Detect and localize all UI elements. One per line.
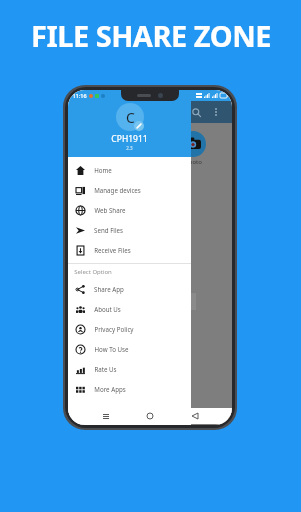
staticText: Privacy Policy (94, 325, 134, 333)
button[interactable]: Edit name (134, 121, 144, 131)
staticText: Receive Files (94, 246, 131, 254)
staticText: CPH1911 (111, 133, 148, 145)
staticText: 2.3 (126, 145, 133, 151)
button[interactable]: Web Share (68, 200, 191, 220)
button[interactable]: Receive Files (68, 240, 191, 260)
staticText: Send Files (94, 226, 123, 234)
button[interactable]: Home (143, 409, 157, 423)
button[interactable]: Back (188, 409, 202, 423)
button[interactable]: About Us (68, 299, 191, 319)
button[interactable]: More Apps (68, 379, 191, 399)
staticText: Photo (185, 158, 202, 166)
button[interactable]: Rate Us (68, 359, 191, 379)
staticText: Manage devices (94, 186, 141, 194)
button[interactable]: More options (208, 104, 224, 120)
staticText: Rate Us (94, 365, 117, 373)
button[interactable]: Share App (68, 279, 191, 299)
staticText: How To Use (94, 345, 129, 353)
staticText: About Us (94, 305, 121, 313)
button[interactable]: Manage devices (68, 180, 191, 200)
button[interactable]: How To Use (68, 339, 191, 359)
button[interactable]: Home (68, 160, 191, 180)
button[interactable]: Photo (180, 131, 206, 157)
staticText: Web Share (94, 206, 126, 214)
button[interactable]: Send Files (68, 220, 191, 240)
button[interactable]: Search (188, 104, 204, 120)
staticText: 11:16 (72, 92, 87, 99)
button[interactable]: Recents (99, 409, 113, 423)
staticText: Select Option (74, 268, 112, 276)
staticText: Share App (94, 285, 124, 293)
staticText: C (126, 108, 135, 127)
staticText: More Apps (94, 385, 126, 393)
staticText: FILE SHARE ZONE (31, 16, 271, 55)
button[interactable]: Privacy Policy (68, 319, 191, 339)
staticText: Home (94, 166, 112, 174)
button[interactable]: C (116, 103, 144, 131)
